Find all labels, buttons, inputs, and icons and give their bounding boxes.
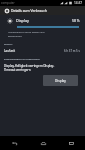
button[interactable]: Display [43,75,78,86]
button[interactable]: Home [29,136,57,150]
staticText: Display-Helligkeit verringern Display- T… [4,64,55,72]
staticText: Details zum Verbrauch [11,8,47,13]
staticText: Akkuverbrauch durch Display und Beleucht… [8,31,45,37]
staticText: Laufzeit [4,49,16,53]
button[interactable]: Back [0,136,29,150]
staticText: 14:37 [74,1,83,5]
staticText: DETAILS [4,43,13,46]
other: Settings [3,7,10,14]
staticText: ENERGIEVERBRAUCH VERRINGERN [4,58,40,61]
button[interactable]: Recent apps [57,136,85,150]
staticText: Display [16,18,29,23]
staticText: 58 % [72,18,80,23]
button[interactable]: Settings [0,6,85,15]
staticText: computer [1,1,15,5]
staticText: 6 h 37 m 5 s [64,49,80,53]
button[interactable]: Laufzeit [4,49,80,53]
staticText: Display [55,79,66,83]
